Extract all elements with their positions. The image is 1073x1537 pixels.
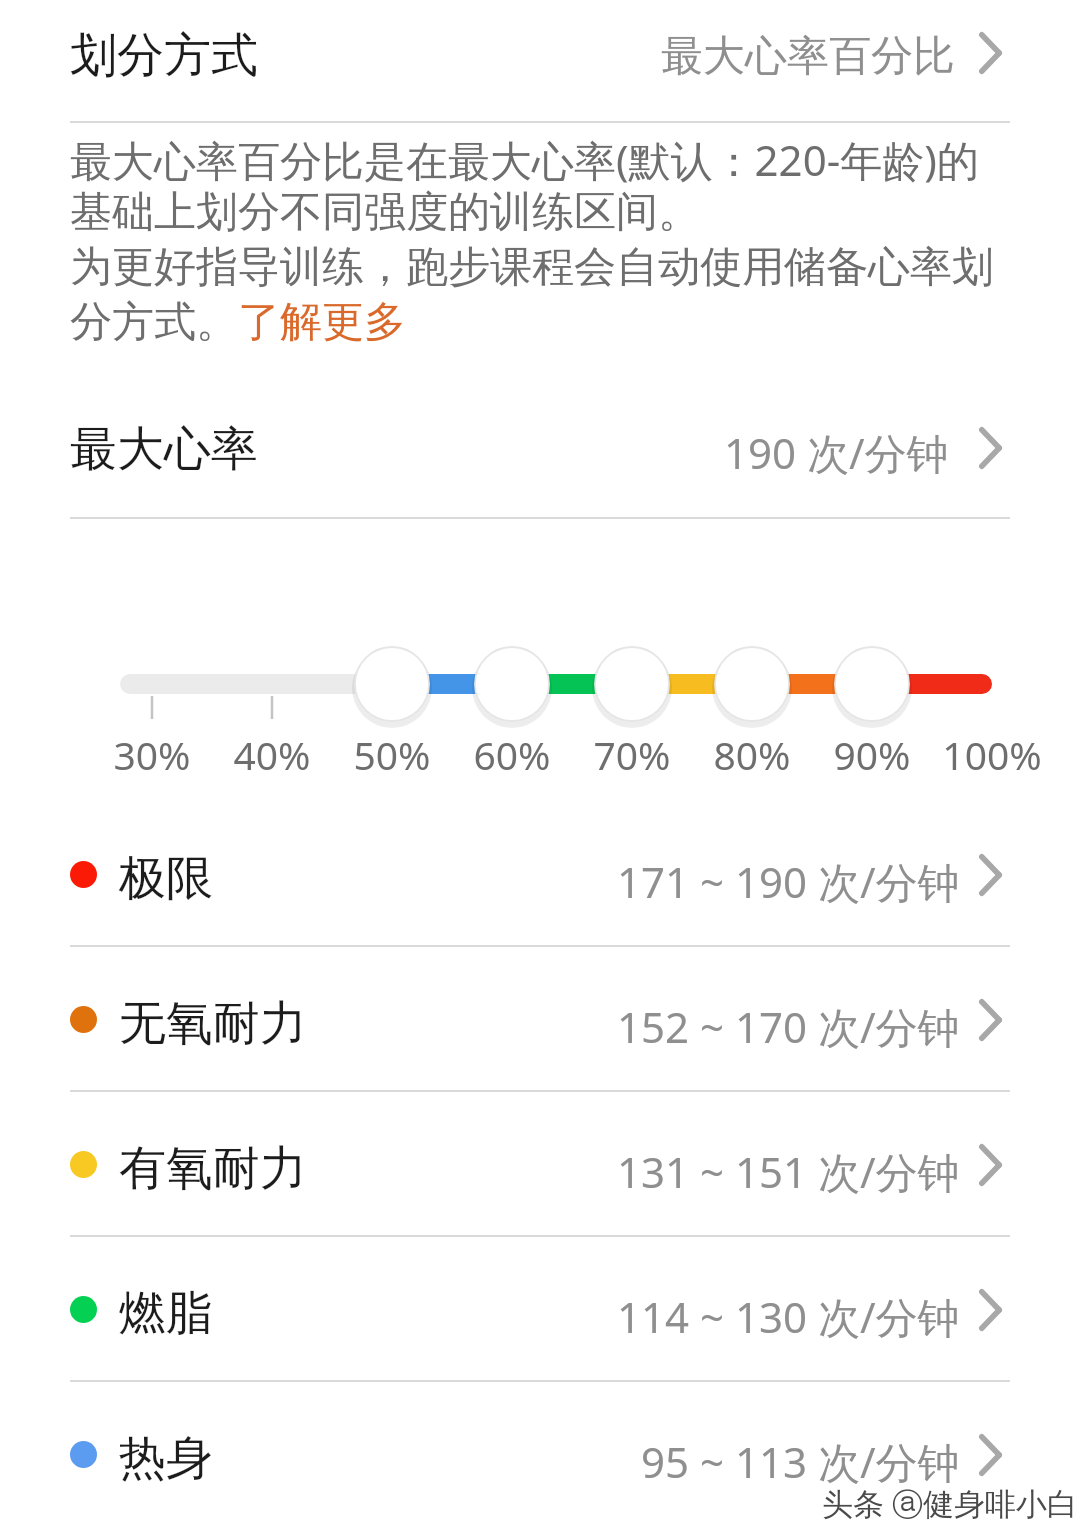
staticText: 131 ~ 151 次/分钟: [617, 1143, 960, 1200]
staticText: 80%: [713, 728, 791, 781]
staticText: 90%: [833, 728, 911, 781]
other: Open: [979, 1144, 1002, 1186]
other: Open: [979, 427, 1002, 469]
staticText: 最大心率百分比是在最大心率(默认：220-年龄)的: [70, 131, 979, 188]
button[interactable]: 极限: [0, 802, 1073, 947]
other: Open: [979, 1289, 1002, 1331]
other: Open: [979, 854, 1002, 896]
other: Open: [979, 32, 1002, 74]
staticText: 最大心率百分比: [661, 30, 955, 83]
staticText: 70%: [593, 728, 671, 781]
staticText: 热身: [119, 1429, 213, 1488]
staticText: 基础上划分不同强度的训练区间。: [70, 186, 700, 239]
staticText: 152 ~ 170 次/分钟: [617, 998, 960, 1055]
staticText: 171 ~ 190 次/分钟: [617, 853, 960, 910]
staticText: 极限: [119, 849, 213, 908]
staticText: 114 ~ 130 次/分钟: [617, 1288, 960, 1345]
staticText: 50%: [353, 728, 431, 781]
staticText: 60%: [473, 728, 551, 781]
button[interactable]: 燃脂: [0, 1237, 1073, 1382]
staticText: 40%: [233, 728, 311, 781]
button[interactable]: 有氧耐力: [0, 1092, 1073, 1237]
staticText: 燃脂: [119, 1284, 213, 1343]
staticText: 95 ~ 113 次/分钟: [641, 1433, 960, 1490]
staticText: 100%: [942, 728, 1042, 781]
staticText: 无氧耐力: [119, 994, 307, 1053]
staticText: 为更好指导训练，跑步课程会自动使用储备心率划: [70, 241, 994, 294]
staticText: 190 次/分钟: [724, 424, 949, 481]
staticText: 划分方式: [70, 26, 258, 85]
staticText: 分方式。: [70, 296, 238, 349]
button[interactable]: 最大心率: [0, 396, 1073, 516]
other: Open: [979, 1434, 1002, 1476]
staticText: 有氧耐力: [119, 1139, 307, 1198]
button[interactable]: 划分方式: [0, 0, 1073, 118]
button[interactable]: 了解更多: [238, 296, 406, 349]
button[interactable]: 热身: [0, 1382, 1073, 1527]
staticText: 30%: [113, 728, 191, 781]
staticText: 最大心率: [70, 420, 258, 479]
other: Open: [979, 999, 1002, 1041]
staticText: 头条 ⓐ健身啡小白: [822, 1482, 1073, 1524]
button[interactable]: 无氧耐力: [0, 947, 1073, 1092]
